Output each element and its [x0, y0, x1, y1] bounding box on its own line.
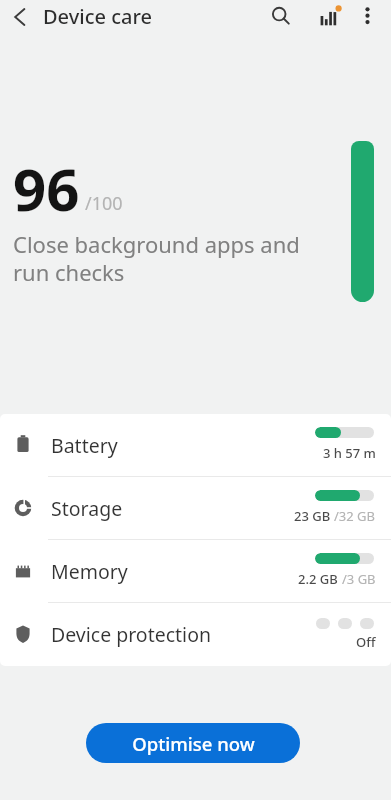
- button[interactable]: Search: [264, 0, 298, 34]
- staticText: Battery: [51, 432, 118, 459]
- staticText: Optimise now: [132, 731, 255, 756]
- button[interactable]: Memory: [0, 540, 391, 602]
- staticText: Storage: [51, 495, 123, 522]
- staticText: 96: [13, 149, 80, 228]
- button[interactable]: Battery: [0, 414, 391, 476]
- staticText: Close background apps and run checks: [13, 229, 300, 288]
- button[interactable]: Statistics: [312, 0, 346, 34]
- staticText: /100: [85, 191, 123, 216]
- staticText: 3 h 57 m: [323, 444, 376, 462]
- staticText: /3 GB: [342, 570, 376, 588]
- button[interactable]: Storage: [0, 477, 391, 539]
- staticText: /32 GB: [334, 507, 376, 525]
- button[interactable]: Optimise now: [86, 723, 300, 763]
- button[interactable]: Device protection: [0, 603, 391, 665]
- staticText: 23 GB: [294, 507, 334, 525]
- staticText: Memory: [51, 558, 128, 585]
- button[interactable]: More options: [350, 0, 384, 34]
- staticText: Device protection: [51, 621, 211, 648]
- staticText: Device care: [43, 3, 152, 30]
- button[interactable]: Back: [3, 0, 36, 33]
- staticText: Off: [356, 633, 376, 651]
- staticText: 2.2 GB: [298, 570, 342, 588]
